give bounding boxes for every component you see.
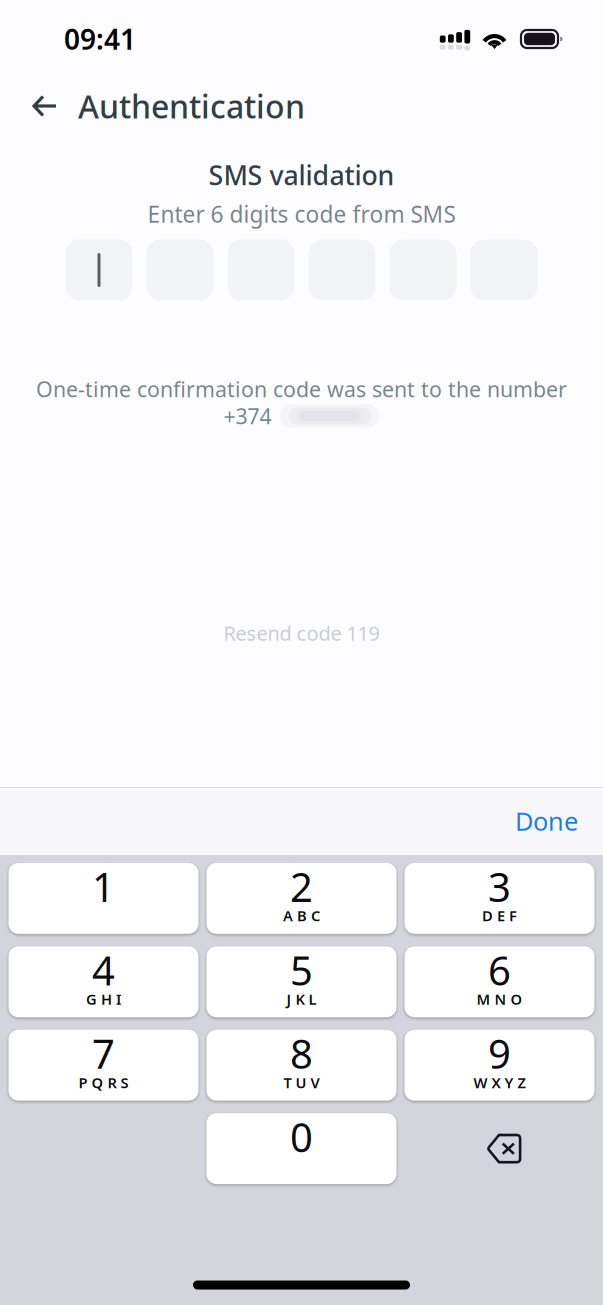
staticText: SMS validation <box>208 157 394 193</box>
staticText: M N O <box>476 989 522 1009</box>
staticText: 9 <box>488 1027 511 1080</box>
button[interactable]: Back <box>18 79 72 133</box>
staticText: A B C <box>283 906 320 925</box>
staticText: 1 <box>92 860 115 913</box>
staticText: J K L <box>286 989 316 1009</box>
button[interactable]: 6 <box>404 946 594 1017</box>
staticText: +374 <box>223 402 271 430</box>
staticText: One-time confirmation code was sent to t… <box>36 375 567 403</box>
button[interactable]: 3 <box>404 863 594 934</box>
button[interactable]: Done <box>515 792 603 850</box>
button[interactable]: 9 <box>404 1030 594 1101</box>
staticText: Done <box>515 804 578 838</box>
staticText: Authentication <box>78 85 305 127</box>
button[interactable]: Delete <box>404 1113 594 1184</box>
button[interactable]: 0 <box>206 1113 396 1184</box>
staticText: 09:41 <box>64 20 136 58</box>
staticText: T U V <box>283 1073 319 1092</box>
staticText: 7 <box>92 1027 115 1080</box>
staticText: P Q R S <box>78 1073 128 1092</box>
staticText: 8 <box>290 1027 313 1080</box>
button[interactable]: 1 <box>8 863 198 934</box>
staticText: 5 <box>290 943 313 996</box>
button[interactable]: Digit 1 <box>65 239 132 300</box>
staticText: 3 <box>488 860 511 913</box>
button[interactable]: 4 <box>8 946 198 1017</box>
button[interactable]: 7 <box>8 1030 198 1101</box>
staticText: Enter 6 digits code from SMS <box>147 199 455 229</box>
button[interactable]: Resend code 119 <box>223 620 379 646</box>
staticText: 0 <box>290 1110 313 1163</box>
staticText: Resend code 119 <box>223 620 379 646</box>
staticText: 2 <box>290 860 313 913</box>
staticText: G H I <box>86 989 121 1009</box>
button[interactable]: Authentication <box>72 85 305 127</box>
staticText: 6 <box>488 943 511 996</box>
staticText: W X Y Z <box>473 1073 525 1092</box>
button[interactable]: 2 <box>206 863 396 934</box>
staticText: 4 <box>92 943 115 996</box>
button[interactable]: 8 <box>206 1030 396 1101</box>
button[interactable]: 5 <box>206 946 396 1017</box>
staticText: D E F <box>482 906 517 925</box>
